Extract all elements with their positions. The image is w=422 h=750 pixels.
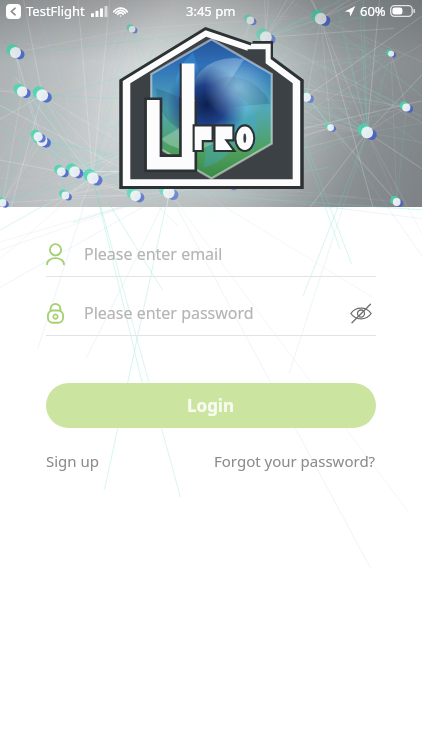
staticText: 60% xyxy=(360,2,386,20)
button[interactable]: Login xyxy=(46,383,376,428)
button[interactable]: Back to TestFlight xyxy=(6,4,21,19)
button[interactable]: Sign up xyxy=(46,446,99,476)
staticText: Please enter email xyxy=(84,243,223,265)
button[interactable]: Please enter email xyxy=(46,236,376,272)
staticText: Please enter password xyxy=(84,302,254,324)
button[interactable]: Show password xyxy=(346,298,376,328)
button[interactable]: Please enter password xyxy=(46,295,376,331)
staticText: Forgot your password? xyxy=(214,451,376,471)
staticText: Sign up xyxy=(46,451,99,471)
staticText: 3:45 pm xyxy=(186,2,236,20)
staticText: Login xyxy=(187,394,235,417)
button[interactable]: Forgot your password? xyxy=(214,446,376,476)
staticText: TestFlight xyxy=(26,2,85,20)
